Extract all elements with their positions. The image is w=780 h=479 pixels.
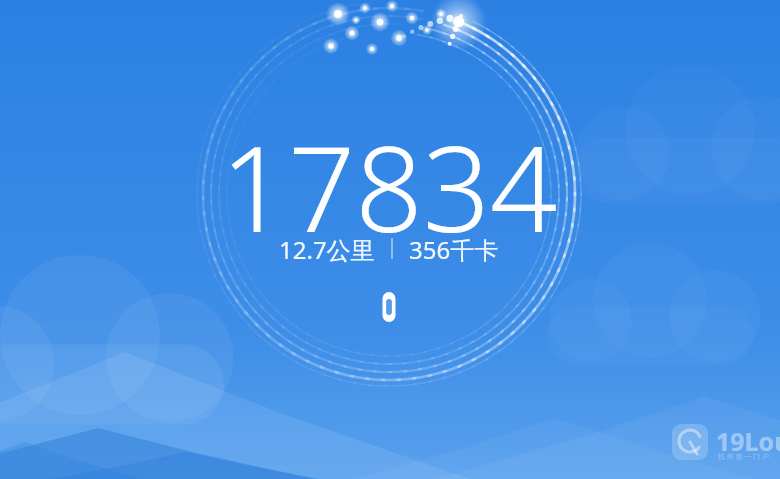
button[interactable]: Daily step counter	[0, 0, 780, 479]
